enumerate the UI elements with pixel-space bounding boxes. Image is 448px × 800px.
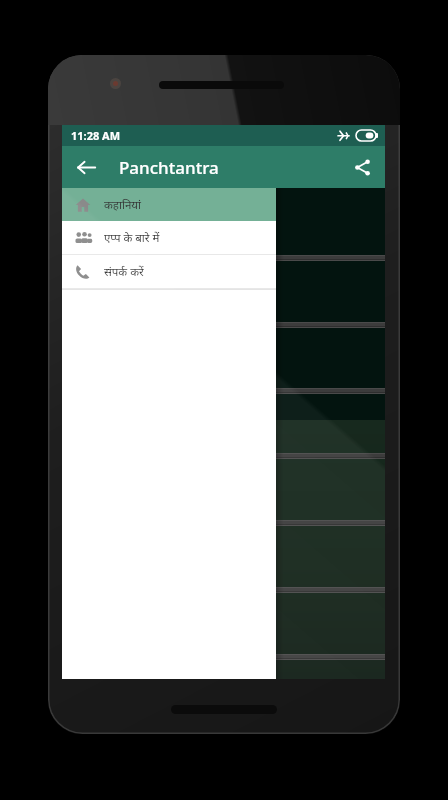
staticText: कहानियां <box>104 197 141 213</box>
staticText: संपर्क करें <box>104 264 144 280</box>
staticText: 11:28 AM <box>71 128 121 143</box>
button[interactable]: एप्प के बारे में <box>62 221 276 254</box>
button[interactable]: Share <box>343 148 381 186</box>
staticText: एप्प के बारे में <box>104 230 160 246</box>
button[interactable]: कहानियां <box>62 188 276 221</box>
staticText: Panchtantra <box>119 156 219 179</box>
button[interactable]: संपर्क करें <box>62 255 276 288</box>
button[interactable]: Navigate up <box>67 148 105 186</box>
